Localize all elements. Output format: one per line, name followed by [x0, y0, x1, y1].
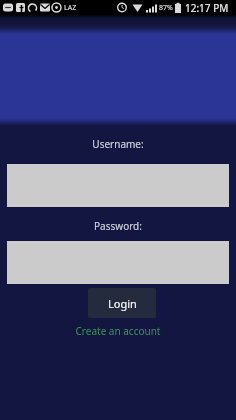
button[interactable]: Create an account [0, 324, 236, 338]
staticText: 12:17 PM [185, 1, 229, 15]
staticText: Username: [0, 137, 236, 151]
staticText: Password: [0, 219, 236, 233]
staticText: Login [108, 296, 137, 311]
staticText: LAZ [64, 3, 77, 13]
staticText: 87% [159, 3, 173, 13]
staticText: Create an account [0, 324, 236, 338]
button[interactable]: Login [88, 288, 156, 318]
